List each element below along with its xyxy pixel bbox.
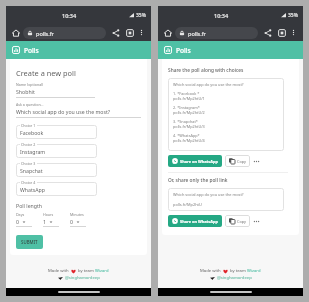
staticText: Days <box>16 212 25 217</box>
staticText: @singhamardeep <box>65 275 100 281</box>
staticText: 0 <box>16 218 19 225</box>
button[interactable]: Share on WhatsApp <box>168 215 222 227</box>
staticText: Wizard <box>247 268 261 274</box>
staticText: polls.fr <box>188 30 206 37</box>
button[interactable]: Share <box>262 27 273 38</box>
staticText: 2. *Instagram* <box>173 105 200 110</box>
staticText: Create a new poll <box>16 68 76 78</box>
button[interactable]: WhatsApp <box>16 182 97 196</box>
staticText: polls.fr/Mp2htU <box>173 202 202 207</box>
staticText: Share on WhatsApp <box>180 159 218 164</box>
button[interactable]: 0 <box>70 218 88 225</box>
staticText: WhatsApp <box>20 186 45 193</box>
staticText: Copy <box>237 219 246 224</box>
button[interactable]: Tabs <box>124 27 135 38</box>
staticText: Share on WhatsApp <box>180 219 218 224</box>
staticText: Name (optional) <box>16 82 44 87</box>
button[interactable]: 1 <box>43 218 61 225</box>
staticText: 4. *WhatsApp* <box>173 133 200 138</box>
button[interactable]: Instagram <box>16 144 97 158</box>
staticText: @singhamardeep <box>217 275 252 281</box>
button[interactable]: Facebook <box>16 125 97 139</box>
staticText: Choice 4 <box>21 180 36 185</box>
button[interactable]: Share on WhatsApp <box>168 155 222 167</box>
button[interactable]: More <box>252 217 261 226</box>
staticText: polls.fr/Mp2htU/3 <box>173 124 205 129</box>
staticText: Choice 2 <box>21 142 36 147</box>
staticText: polls.fr <box>36 30 54 37</box>
staticText: Which social app do you use the most? <box>173 192 244 197</box>
button[interactable]: Home <box>11 28 21 38</box>
staticText: Choice 1 <box>21 123 36 128</box>
staticText: polls.fr/Mp2htU/4 <box>173 138 205 143</box>
staticText: 35% <box>136 12 146 19</box>
staticText: Poll length <box>16 202 43 209</box>
staticText: 1. *Facebook * <box>173 91 200 96</box>
button[interactable]: Copy <box>225 155 250 167</box>
staticText: polls.fr/Mp2htU/1 <box>173 96 205 101</box>
button[interactable]: 0 <box>16 218 34 225</box>
staticText: Snapchat <box>20 167 43 174</box>
staticText: polls.fr/Mp2htU/2 <box>173 110 205 115</box>
button[interactable]: More <box>252 157 261 166</box>
button[interactable]: Share <box>110 27 121 38</box>
button[interactable]: SUBMIT <box>16 235 43 249</box>
staticText: 0 <box>70 218 73 225</box>
staticText: by team <box>230 268 247 274</box>
staticText: Polls <box>24 46 39 55</box>
button[interactable]: Snapchat <box>16 163 97 177</box>
staticText: Minutes <box>70 212 84 217</box>
staticText: Instagram <box>20 148 46 155</box>
staticText: 10:34 <box>214 12 229 19</box>
staticText: 35% <box>288 12 298 19</box>
button[interactable]: More options <box>137 28 146 37</box>
staticText: SUBMIT <box>21 239 38 245</box>
staticText: 3. *Snapchat* <box>173 119 198 124</box>
staticText: 10:34 <box>62 12 77 19</box>
staticText: Wizard <box>95 268 109 274</box>
button[interactable]: Copy <box>225 215 250 227</box>
button[interactable]: polls.fr <box>23 27 106 39</box>
staticText: 1 <box>43 218 46 225</box>
staticText: Polls <box>176 46 191 55</box>
staticText: Which social app do you use the most? <box>16 108 111 115</box>
staticText: Copy <box>237 159 246 164</box>
staticText: Shobhit <box>16 88 35 95</box>
button[interactable]: More options <box>289 28 298 37</box>
staticText: Ask a question... <box>16 102 44 107</box>
staticText: by team <box>78 268 95 274</box>
button[interactable]: Tabs <box>276 27 287 38</box>
staticText: Which social app do you use the most? <box>173 82 244 87</box>
staticText: Hours <box>43 212 54 217</box>
button[interactable]: polls.fr <box>175 27 258 39</box>
staticText: Choice 3 <box>21 161 36 166</box>
staticText: Share the poll along with choices <box>168 67 244 74</box>
staticText: Or, share only the poll link <box>168 177 228 184</box>
staticText: Made with <box>200 268 221 274</box>
button[interactable]: Home <box>163 28 173 38</box>
staticText: Facebook <box>20 129 44 136</box>
staticText: Made with <box>48 268 69 274</box>
